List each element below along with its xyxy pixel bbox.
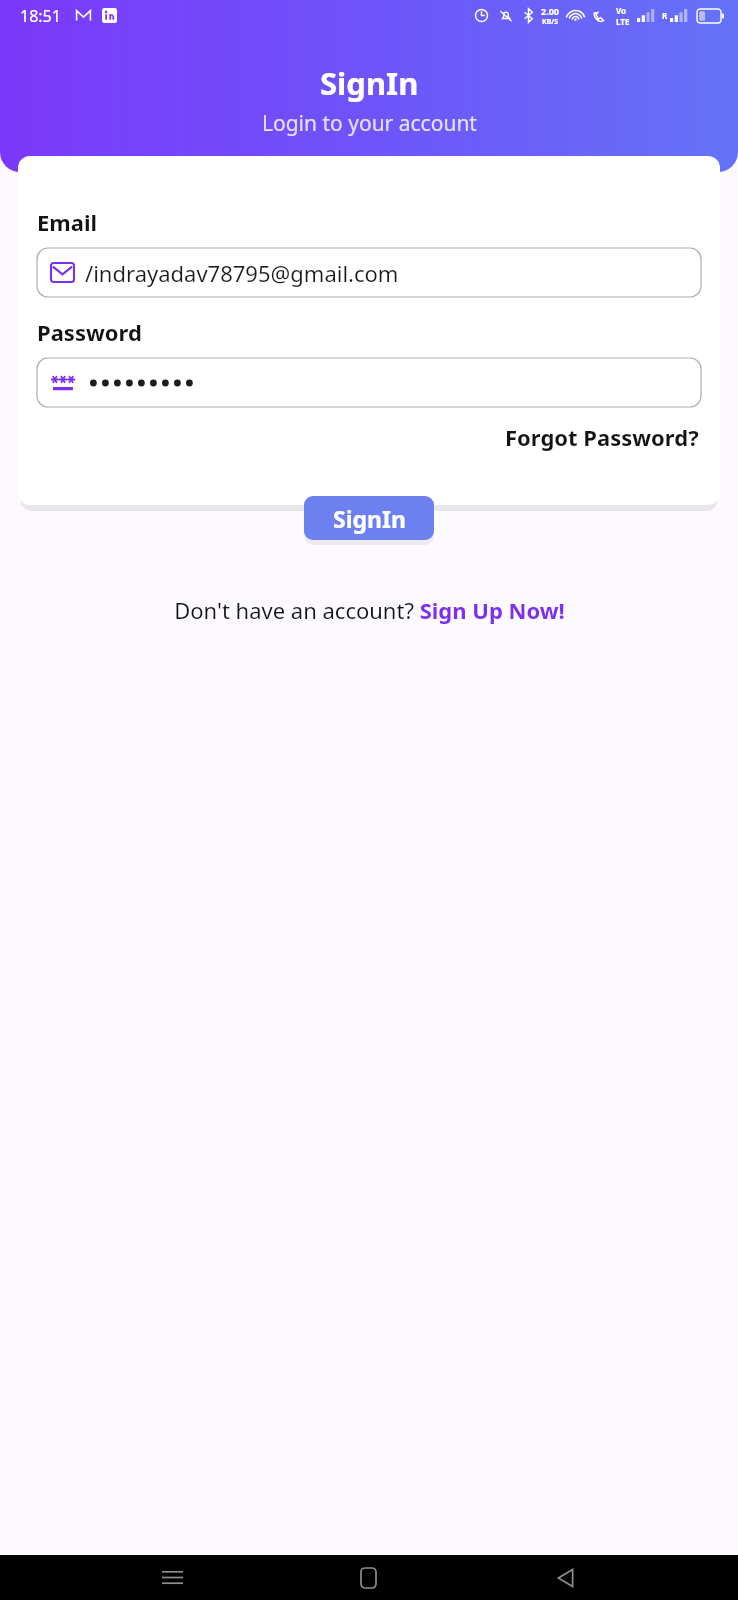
button[interactable]: SignIn (304, 496, 434, 540)
button[interactable]: Home (344, 1555, 392, 1600)
staticText: Vo (616, 5, 627, 16)
staticText: 2.00 (541, 5, 559, 17)
staticText: Login to your account (262, 109, 477, 138)
staticText: SignIn (333, 503, 406, 534)
staticText: LTE (616, 16, 630, 27)
staticText: SignIn (320, 62, 419, 104)
staticText: Forgot Password? (505, 422, 699, 452)
staticText: Password (37, 317, 142, 347)
button[interactable]: Password (37, 358, 701, 407)
staticText: R (662, 10, 668, 21)
staticText: Don't have an account? Sign Up Now! (174, 595, 565, 625)
button[interactable]: Forgot Password? (503, 420, 701, 454)
staticText: 18:51 (20, 5, 61, 27)
staticText: Email (37, 207, 98, 237)
other: Password (51, 372, 75, 394)
button[interactable]: Back (541, 1555, 589, 1600)
staticText: KB/S (542, 17, 559, 27)
button[interactable]: Recent apps (148, 1555, 196, 1600)
staticText: /indrayadav78795@gmail.com (85, 258, 399, 288)
button[interactable]: Don't have an account? Sign Up Now! (170, 591, 569, 629)
other: Email (51, 263, 74, 282)
button[interactable]: Email (37, 248, 701, 297)
